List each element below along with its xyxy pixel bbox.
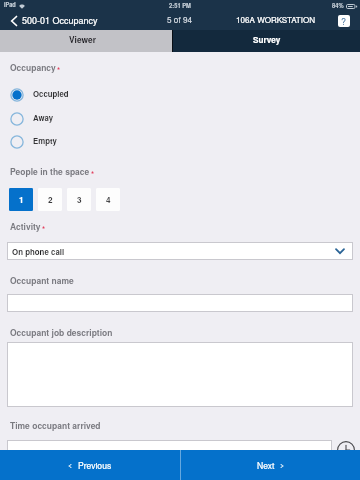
staticText: Survey: [253, 34, 281, 46]
staticText: 5 of 94: [167, 14, 193, 26]
staticText: <: [68, 460, 73, 470]
button[interactable]: Empty: [0, 134, 360, 150]
staticText: Occupant job description: [10, 326, 113, 338]
staticText: 500-01 Occupancy: [22, 14, 98, 27]
staticText: Activity: [10, 220, 41, 232]
button[interactable]: 3: [67, 188, 91, 211]
staticText: Viewer: [69, 34, 96, 46]
button[interactable]: Pick time: [335, 439, 356, 460]
button[interactable]: On phone call: [7, 242, 353, 260]
button[interactable]: [7, 440, 332, 458]
button[interactable]: Survey: [173, 30, 360, 52]
staticText: 84%: [332, 1, 344, 9]
staticText: Previous: [78, 459, 112, 471]
staticText: Occupancy: [10, 61, 56, 73]
staticText: Next: [257, 459, 275, 471]
staticText: >: [280, 460, 285, 470]
button[interactable]: Away: [0, 111, 360, 127]
staticText: 1: [19, 194, 24, 206]
button[interactable]: 500-01 Occupancy: [0, 12, 104, 30]
staticText: Occupant name: [10, 274, 74, 286]
staticText: On phone call: [12, 246, 65, 257]
staticText: Time occupant arrived: [10, 419, 101, 431]
button[interactable]: 4: [96, 188, 120, 211]
staticText: 2:51 PM: [169, 1, 191, 9]
staticText: Occupied: [33, 88, 69, 99]
button[interactable]: Help: [338, 15, 350, 27]
button[interactable]: [7, 294, 353, 312]
staticText: *: [91, 168, 95, 179]
staticText: 106A WORKSTATION: [236, 14, 316, 26]
button[interactable]: Viewer: [0, 30, 172, 52]
staticText: *: [42, 223, 46, 234]
staticText: 3: [77, 194, 82, 206]
staticText: ?: [341, 15, 347, 27]
button[interactable]: [7, 342, 353, 407]
button[interactable]: Occupied: [0, 87, 360, 103]
staticText: iPad: [4, 1, 16, 9]
button[interactable]: Next: [181, 450, 360, 480]
button[interactable]: 1: [9, 188, 33, 211]
staticText: 4: [106, 194, 111, 206]
button[interactable]: 2: [38, 188, 62, 211]
staticText: Away: [33, 112, 54, 123]
staticText: *: [57, 64, 61, 75]
staticText: 2: [48, 194, 53, 206]
staticText: People in the space: [10, 165, 90, 177]
staticText: Empty: [33, 135, 57, 146]
button[interactable]: <: [0, 450, 180, 480]
